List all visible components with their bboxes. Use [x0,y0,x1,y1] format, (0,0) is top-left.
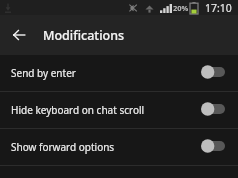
staticText: Hide keyboard on chat scroll [11,103,201,117]
button[interactable]: Toggle Show forward options [201,139,225,153]
button[interactable]: Toggle Hide keyboard on chat scroll [201,102,225,116]
button[interactable]: Toggle Send by enter [201,65,225,79]
button[interactable]: Show forward options [0,129,238,165]
staticText: Show forward options [11,140,201,154]
staticText: Send by enter [11,66,201,80]
staticText: 20% [173,3,189,13]
button[interactable]: Navigate up [0,16,38,54]
button[interactable]: Send by enter [0,55,238,91]
staticText: Modifications [43,27,125,44]
button[interactable]: Hide keyboard on chat scroll [0,92,238,128]
staticText: 17:10 [205,1,232,15]
